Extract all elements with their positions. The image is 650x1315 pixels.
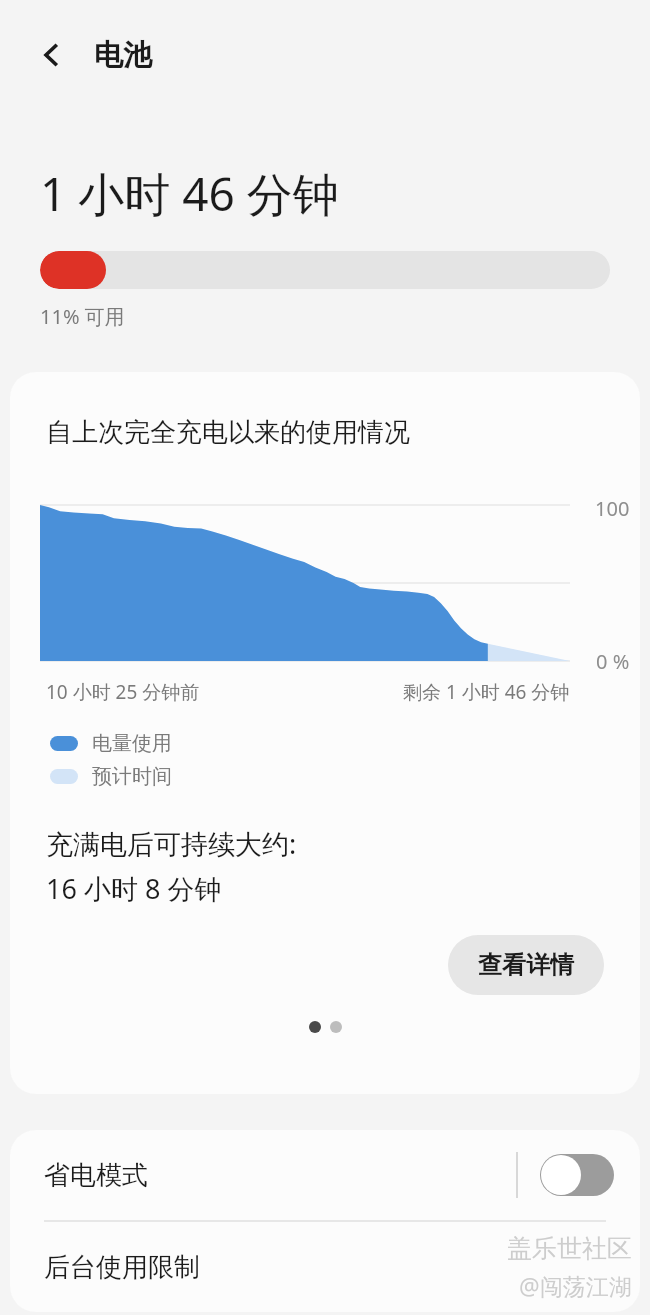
staticText: 省电模式: [44, 1159, 148, 1192]
staticText: 电量使用: [92, 731, 172, 756]
staticText: 11% 可用: [40, 303, 125, 330]
staticText: 自上次完全充电以来的使用情况: [46, 416, 410, 449]
button[interactable]: Power saving toggle: [540, 1154, 614, 1196]
staticText: 后台使用限制: [44, 1251, 200, 1284]
staticText: 查看详情: [478, 950, 574, 980]
staticText: @闯荡江湖: [519, 1270, 632, 1301]
staticText: 100: [595, 495, 630, 522]
button[interactable]: 省电模式: [10, 1130, 640, 1220]
staticText: 1 小时 46 分钟: [40, 162, 339, 225]
staticText: 16 小时 8 分钟: [46, 870, 222, 907]
staticText: 剩余 1 小时 46 分钟: [403, 679, 570, 705]
staticText: 盖乐世社区: [507, 1233, 632, 1264]
staticText: 0 %: [596, 648, 630, 675]
button[interactable]: Back: [24, 27, 80, 83]
button[interactable]: 查看详情: [448, 935, 604, 995]
button[interactable]: 后台使用限制: [10, 1222, 640, 1312]
staticText: 充满电后可持续大约:: [46, 825, 297, 862]
staticText: 预计时间: [92, 764, 172, 789]
staticText: 电池: [94, 37, 152, 74]
staticText: 10 小时 25 分钟前: [46, 679, 200, 705]
